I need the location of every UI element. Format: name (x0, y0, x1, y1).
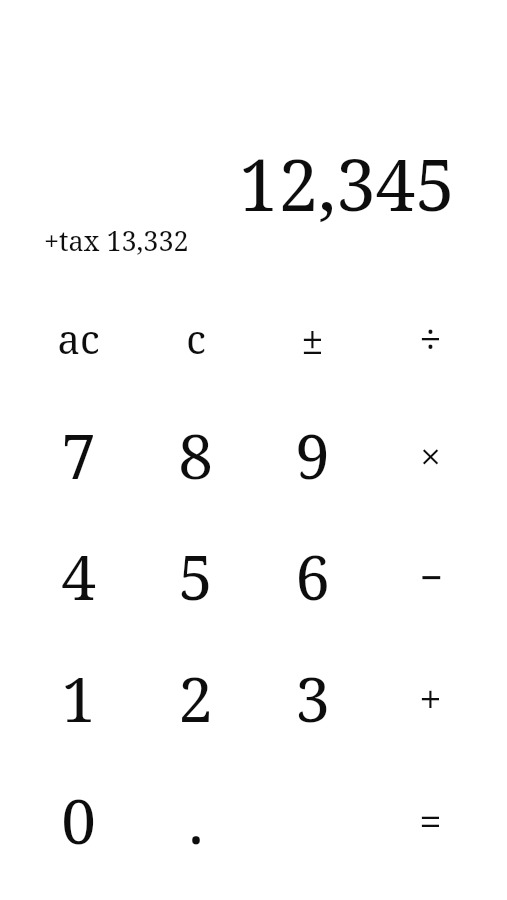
button[interactable]: 0 (20, 760, 137, 880)
staticText: c (186, 311, 206, 365)
button[interactable]: Divide (372, 278, 489, 398)
staticText: ± (301, 311, 324, 365)
button[interactable]: Add (372, 638, 489, 758)
button[interactable]: Subtract (372, 516, 489, 636)
staticText: 4 (61, 534, 96, 618)
button[interactable]: 8 (137, 395, 254, 515)
staticText: 2 (178, 656, 213, 740)
button[interactable]: 1 (20, 638, 137, 758)
button[interactable]: Toggle sign (254, 278, 371, 398)
staticText: 6 (295, 534, 330, 618)
staticText: ac (57, 311, 100, 365)
staticText: 9 (295, 413, 330, 497)
button[interactable]: Multiply (372, 395, 489, 515)
staticText: + (419, 671, 442, 725)
staticText: 7 (61, 413, 96, 497)
button[interactable]: Equals (372, 760, 489, 880)
button[interactable]: c (137, 278, 254, 398)
staticText: 3 (295, 656, 330, 740)
staticText: × (420, 430, 441, 480)
staticText: . (188, 778, 204, 862)
button[interactable]: 4 (20, 516, 137, 636)
button[interactable]: ac (20, 278, 137, 398)
button[interactable]: 9 (254, 395, 371, 515)
button[interactable]: 3 (254, 638, 371, 758)
staticText: 5 (178, 534, 213, 618)
staticText: 12,345 (238, 135, 455, 232)
staticText: = (419, 793, 442, 847)
button[interactable]: Decimal point (137, 760, 254, 880)
staticText: ÷ (419, 311, 442, 365)
staticText: +tax 13,332 (44, 222, 189, 259)
staticText: 0 (61, 778, 96, 862)
button[interactable]: 2 (137, 638, 254, 758)
staticText: 8 (178, 413, 213, 497)
button[interactable]: 5 (137, 516, 254, 636)
staticText: − (419, 549, 443, 603)
button[interactable]: 7 (20, 395, 137, 515)
staticText: 1 (61, 656, 96, 740)
button[interactable]: 6 (254, 516, 371, 636)
